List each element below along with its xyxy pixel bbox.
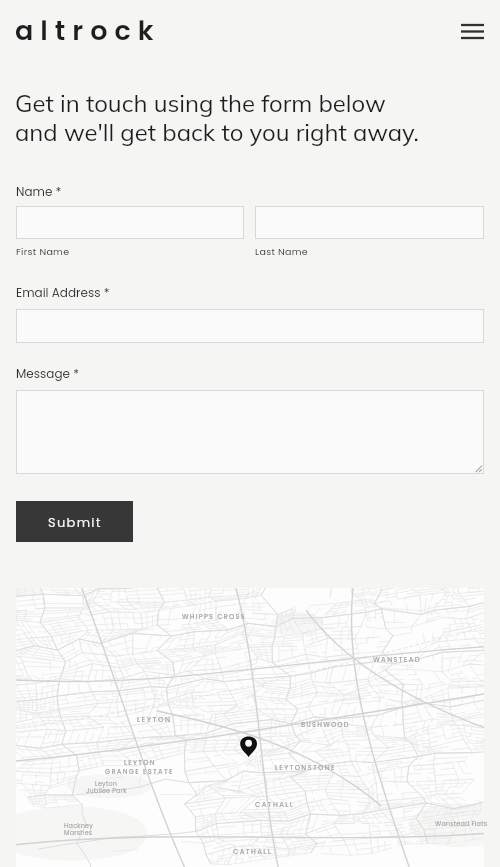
- staticText: WHIPPS CROSS: [182, 612, 246, 621]
- staticText: LEYTON: [137, 715, 172, 725]
- staticText: CATHALL: [233, 847, 273, 857]
- staticText: Leyton: [95, 779, 118, 788]
- staticText: First Name: [16, 245, 70, 258]
- button[interactable]: Submit: [16, 501, 133, 542]
- staticText: Last Name: [255, 245, 308, 258]
- staticText: Marshes: [64, 828, 93, 837]
- staticText: altrock: [15, 12, 161, 50]
- staticText: Message *: [16, 365, 80, 382]
- staticText: LEYTONSTONE: [275, 763, 336, 773]
- button[interactable]: Open menu: [453, 12, 491, 50]
- staticText: BUSHWOOD: [301, 720, 350, 729]
- button[interactable]: [16, 206, 244, 239]
- button[interactable]: Map showing office location: [16, 588, 484, 867]
- staticText: Get in touch using the form below and we…: [15, 88, 419, 147]
- staticText: WANSTEAD: [373, 655, 421, 665]
- staticText: Hackney: [64, 821, 93, 830]
- staticText: CATHALL: [255, 800, 295, 810]
- staticText: GRANGE ESTATE: [105, 767, 174, 776]
- button[interactable]: [255, 206, 484, 239]
- staticText: Email Address *: [16, 284, 110, 301]
- staticText: LEYTON: [124, 758, 156, 767]
- staticText: Name *: [16, 183, 62, 200]
- button[interactable]: [16, 390, 484, 474]
- button[interactable]: [16, 309, 484, 343]
- staticText: Submit: [48, 513, 102, 531]
- staticText: Jubilee Park: [86, 786, 127, 795]
- staticText: Wanstead Flats: [435, 819, 488, 828]
